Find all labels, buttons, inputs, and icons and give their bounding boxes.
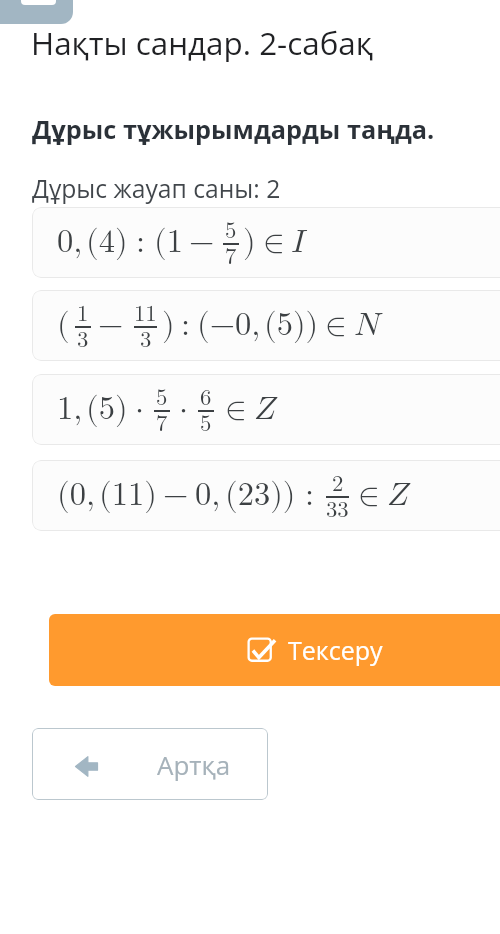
staticText: 3 — [140, 329, 152, 352]
staticText: (4) — [86, 226, 128, 259]
staticText: 5 — [225, 220, 237, 243]
staticText: − — [98, 309, 124, 342]
staticText: (1 — [154, 226, 183, 259]
staticText: 1, — [57, 393, 83, 426]
button[interactable]: ( — [32, 290, 500, 361]
staticText: : — [181, 309, 191, 342]
staticText: (23)) — [225, 479, 296, 512]
staticText: Тексеру — [288, 633, 383, 667]
staticText: 1 — [77, 303, 89, 326]
staticText: 0, — [195, 479, 221, 512]
staticText: 7 — [156, 413, 168, 436]
staticText: ) — [162, 309, 175, 342]
staticText: 6 — [200, 387, 212, 410]
staticText: (−0, — [197, 309, 261, 342]
staticText: ∈ — [325, 309, 347, 342]
staticText: Дұрыс тұжырымдарды таңда. — [32, 112, 435, 146]
staticText: ∈ — [263, 226, 285, 259]
staticText: 33 — [326, 499, 349, 522]
staticText: − — [163, 479, 189, 512]
staticText: − — [189, 226, 215, 259]
staticText: ( — [57, 309, 70, 342]
staticText: 𝐼 — [291, 226, 306, 259]
staticText: 3 — [77, 329, 89, 352]
staticText: 5 — [200, 413, 212, 436]
staticText: · — [135, 393, 145, 426]
button[interactable]: Back — [32, 728, 268, 800]
staticText: : — [305, 479, 315, 512]
button[interactable]: Тексеру — [49, 614, 500, 686]
button[interactable]: (0, — [32, 460, 500, 531]
staticText: ∈ — [358, 479, 380, 512]
staticText: (5) — [86, 393, 128, 426]
other: Back — [75, 756, 98, 777]
button[interactable]: 1, — [32, 374, 500, 445]
staticText: 𝑍 — [254, 393, 277, 426]
staticText: 11 — [134, 303, 157, 326]
staticText: 𝑍 — [387, 479, 410, 512]
staticText: (0, — [57, 479, 95, 512]
staticText: 𝑁 — [354, 309, 381, 342]
staticText: : — [136, 226, 146, 259]
staticText: ∈ — [225, 393, 247, 426]
staticText: Нақты сандар. 2-сабақ — [31, 21, 373, 64]
staticText: 2 — [332, 473, 344, 496]
button[interactable]: 0, — [32, 207, 500, 278]
staticText: 5 — [156, 387, 168, 410]
staticText: ) — [243, 226, 256, 259]
staticText: Артқа — [157, 747, 231, 782]
staticText: 7 — [225, 246, 237, 269]
staticText: Дұрыс жауап саны: 2 — [32, 172, 281, 206]
staticText: 0, — [57, 226, 83, 259]
staticText: (5)) — [264, 309, 319, 342]
staticText: (11) — [99, 479, 157, 512]
staticText: · — [179, 393, 189, 426]
